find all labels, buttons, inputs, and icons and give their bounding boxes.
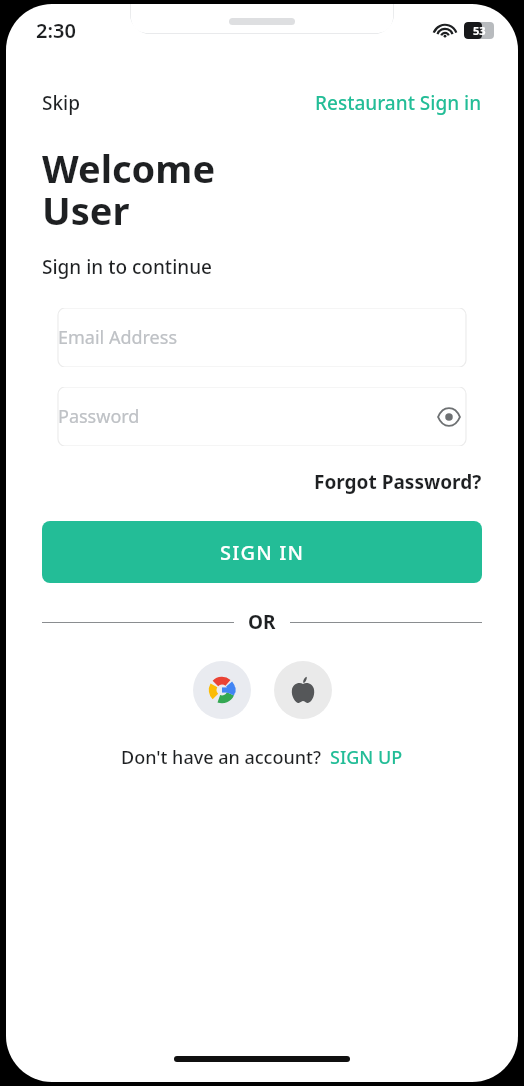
staticText: Welcome User — [42, 142, 216, 236]
button[interactable]: Show password — [432, 400, 466, 434]
button[interactable]: Restaurant Sign in — [315, 86, 482, 120]
staticText: Password — [58, 404, 140, 429]
button[interactable]: SIGN UP — [330, 745, 403, 770]
staticText: Skip — [42, 90, 80, 116]
staticText: Don't have an account? — [121, 745, 321, 770]
button[interactable]: Forgot Password? — [314, 466, 482, 498]
button[interactable]: Sign in with Google — [193, 661, 251, 719]
staticText: 2:30 — [36, 17, 76, 44]
button[interactable]: Password — [42, 387, 482, 446]
button[interactable]: Sign in with Apple — [274, 661, 332, 719]
staticText: SIGN IN — [220, 539, 305, 566]
staticText: SIGN UP — [330, 745, 403, 770]
button[interactable]: SIGN IN — [42, 521, 482, 583]
staticText: 53 — [473, 23, 486, 38]
staticText: Forgot Password? — [314, 469, 482, 495]
staticText: Email Address — [58, 325, 178, 350]
button[interactable]: Email Address — [42, 308, 482, 367]
staticText: OR — [248, 609, 276, 635]
staticText: Sign in to continue — [42, 254, 213, 280]
staticText: Restaurant Sign in — [315, 90, 482, 116]
button[interactable]: Skip — [42, 86, 80, 120]
